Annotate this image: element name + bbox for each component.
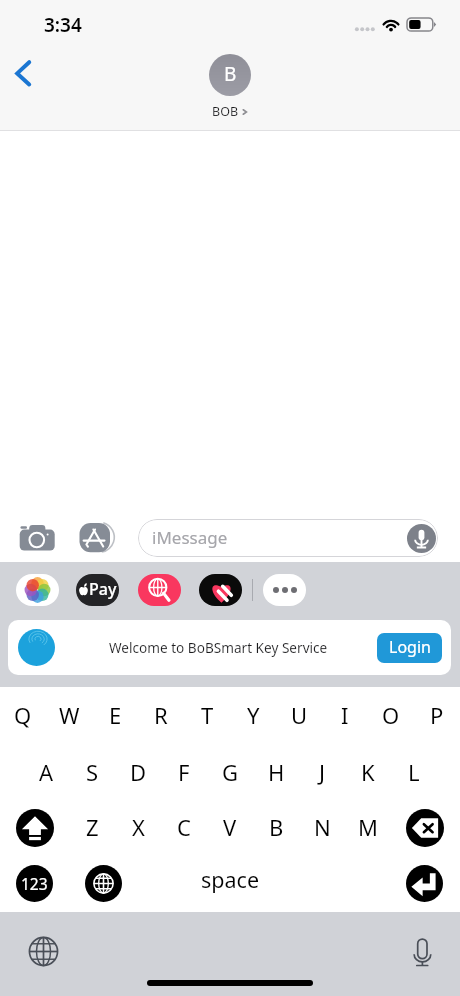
button[interactable]: J (299, 748, 345, 796)
staticText: space (201, 865, 260, 894)
staticText: D (130, 757, 147, 787)
button[interactable]: S (69, 748, 115, 796)
button[interactable]: N (299, 803, 345, 851)
button[interactable]: 123 (16, 865, 53, 902)
button[interactable]: Return (406, 865, 443, 902)
staticText: U (291, 700, 308, 730)
staticText: H (268, 757, 285, 787)
staticText: E (109, 700, 122, 730)
button[interactable]: R (138, 691, 184, 739)
button[interactable]: App Store (76, 518, 116, 558)
button[interactable]: I (322, 691, 368, 739)
staticText: Y (247, 700, 260, 730)
button[interactable]: Apple Pay (76, 574, 119, 606)
staticText: I (341, 700, 349, 730)
button[interactable]: G (207, 748, 253, 796)
staticText: 3:34 (44, 12, 82, 38)
button[interactable]: H (253, 748, 299, 796)
button[interactable]: Photos (16, 574, 59, 606)
button[interactable]: More (263, 574, 306, 606)
button[interactable]: space (130, 860, 330, 898)
staticText: G (222, 757, 239, 787)
button[interactable]: Delete (406, 809, 444, 847)
staticText: T (201, 700, 214, 730)
staticText: L (408, 757, 420, 787)
button[interactable]: Z (69, 803, 115, 851)
button[interactable]: Welcome to BoBSmart Key Service (8, 620, 451, 675)
button[interactable]: Camera (15, 522, 59, 554)
staticText: A (39, 757, 54, 787)
button[interactable]: W (46, 691, 92, 739)
button[interactable]: T (184, 691, 230, 739)
button[interactable]: iMessage (138, 519, 438, 557)
button[interactable]: O (368, 691, 414, 739)
button[interactable]: Switch keyboard (85, 865, 122, 902)
staticText: F (178, 757, 190, 787)
button[interactable]: M (345, 803, 391, 851)
button[interactable]: Switch keyboard (25, 933, 62, 970)
button[interactable]: L (391, 748, 437, 796)
button[interactable]: E (92, 691, 138, 739)
button[interactable]: Y (230, 691, 276, 739)
staticText: BOB (212, 103, 239, 120)
button[interactable]: U (276, 691, 322, 739)
staticText: W (59, 700, 80, 730)
staticText: B (269, 812, 284, 842)
staticText: Z (86, 812, 99, 842)
staticText: B (224, 61, 237, 87)
button[interactable]: B (253, 803, 299, 851)
button[interactable]: Login (377, 633, 442, 663)
button[interactable]: V (207, 803, 253, 851)
staticText: K (361, 757, 375, 787)
staticText: M (358, 812, 378, 842)
button[interactable]: D (115, 748, 161, 796)
button[interactable]: Dictation (404, 933, 441, 970)
button[interactable]: Audio message (407, 524, 436, 553)
button[interactable]: C (161, 803, 207, 851)
staticText: C (177, 812, 191, 842)
staticText: N (314, 812, 331, 842)
button[interactable]: Fitness (199, 574, 242, 606)
button[interactable]: Search (138, 574, 181, 606)
button[interactable]: A (23, 748, 69, 796)
staticText: V (223, 812, 237, 842)
staticText: Pay (89, 578, 117, 600)
staticText: R (154, 700, 168, 730)
staticText: P (430, 700, 444, 730)
staticText: 123 (21, 873, 48, 894)
button[interactable]: F (161, 748, 207, 796)
button[interactable]: K (345, 748, 391, 796)
button[interactable]: P (414, 691, 460, 739)
staticText: O (382, 700, 400, 730)
button[interactable]: Q (0, 691, 46, 739)
button[interactable]: B (209, 54, 251, 120)
staticText: S (86, 757, 99, 787)
staticText: Q (14, 700, 32, 730)
button[interactable]: Shift (16, 809, 54, 847)
staticText: Welcome to BoBSmart Key Service (109, 638, 328, 657)
staticText: X (132, 812, 145, 842)
button[interactable]: Back (4, 51, 48, 95)
staticText: iMessage (152, 526, 228, 549)
staticText: Login (389, 636, 431, 658)
staticText: J (319, 757, 326, 787)
button[interactable]: X (115, 803, 161, 851)
